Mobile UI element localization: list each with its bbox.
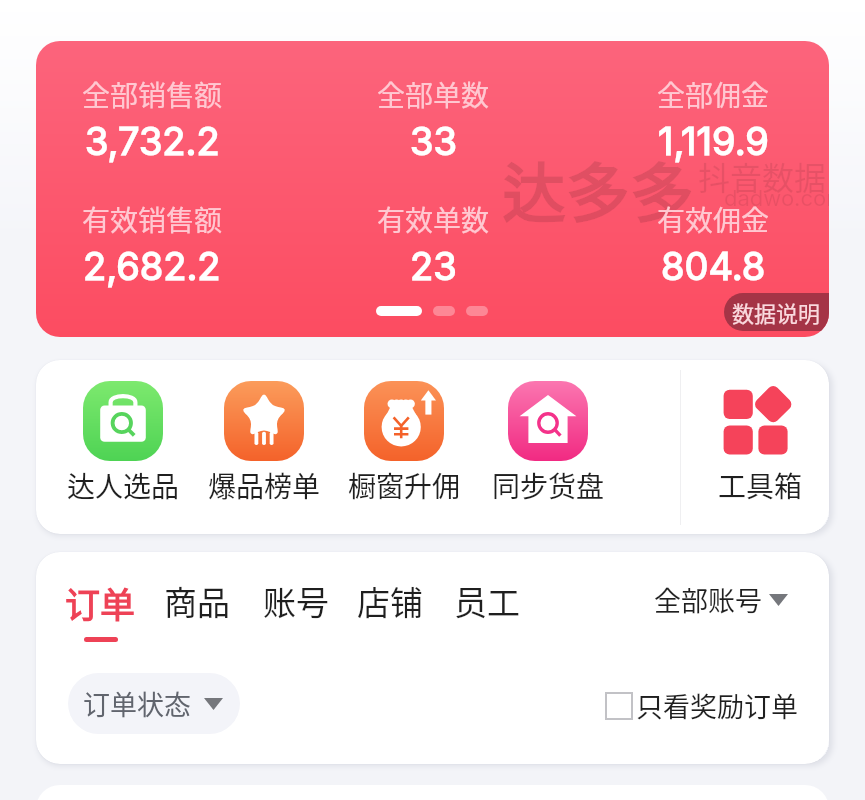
staticText: 全部账号 <box>654 580 762 619</box>
button[interactable]: 订单 <box>65 577 136 642</box>
staticText: 员工 <box>454 577 520 625</box>
staticText: 爆品榜单 <box>208 465 321 506</box>
button[interactable]: 只看奖励订单 <box>606 686 798 725</box>
button[interactable]: 工具箱 <box>685 360 829 534</box>
staticText: 抖音数据 <box>698 153 827 199</box>
staticText: 有效单数 <box>377 199 490 240</box>
staticText: 有效佣金 <box>657 199 770 240</box>
staticText: 工具箱 <box>718 465 803 506</box>
button[interactable]: 同步货盘 <box>473 360 623 534</box>
staticText: 804.8 <box>661 243 766 289</box>
staticText: 有效销售额 <box>82 199 223 240</box>
button[interactable]: 员工 <box>454 577 520 634</box>
staticText: 达人选品 <box>67 465 180 506</box>
staticText: 店铺 <box>357 577 423 625</box>
staticText: 订单 <box>65 577 136 628</box>
button[interactable]: 账号 <box>263 577 329 634</box>
staticText: 23 <box>410 243 457 289</box>
staticText: 1,119.9 <box>658 118 769 164</box>
button[interactable]: 达人选品 <box>48 360 198 534</box>
staticText: 3,732.2 <box>85 118 220 164</box>
staticText: 橱窗升佣 <box>348 465 461 506</box>
staticText: 达多多 <box>502 142 694 235</box>
staticText: dadwo.com <box>724 185 829 212</box>
staticText: 数据说明 <box>732 296 821 328</box>
staticText: 33 <box>410 118 457 164</box>
button[interactable]: 商品 <box>164 577 230 634</box>
other: 工具箱 <box>720 381 800 461</box>
button[interactable]: 订单状态 <box>68 673 240 734</box>
button[interactable]: 达多多 <box>36 41 829 337</box>
staticText: 订单状态 <box>83 684 191 723</box>
staticText: 2,682.2 <box>83 243 221 289</box>
staticText: 同步货盘 <box>492 465 605 506</box>
staticText: 账号 <box>263 577 329 625</box>
staticText: 全部佣金 <box>657 74 770 115</box>
button[interactable]: 数据说明 <box>724 293 829 331</box>
button[interactable]: 店铺 <box>357 577 423 634</box>
staticText: 全部单数 <box>377 74 490 115</box>
button[interactable]: 橱窗升佣 <box>329 360 479 534</box>
staticText: 只看奖励订单 <box>636 686 798 725</box>
staticText: 全部销售额 <box>82 74 223 115</box>
button[interactable]: 全部账号 <box>654 580 788 619</box>
staticText: 商品 <box>164 577 230 625</box>
button[interactable]: 爆品榜单 <box>189 360 339 534</box>
